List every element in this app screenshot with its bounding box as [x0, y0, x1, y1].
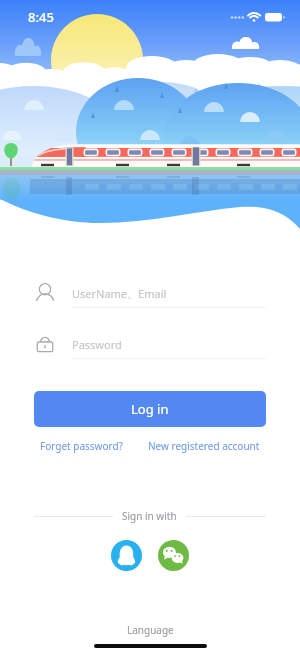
button[interactable]: New registered account	[142, 436, 266, 456]
button[interactable]: Sign in with WeChat	[158, 540, 189, 571]
staticText: Password	[72, 337, 122, 352]
staticText: Sign in with	[122, 509, 177, 523]
staticText: 8:45	[28, 8, 54, 26]
staticText: New registered account	[148, 439, 260, 453]
button[interactable]: Sign in with QQ	[111, 540, 142, 571]
button[interactable]: UserName、Email	[34, 279, 266, 307]
button[interactable]: Log in	[34, 391, 266, 427]
staticText: Log in	[131, 400, 169, 418]
staticText: UserName、Email	[72, 286, 167, 301]
button[interactable]: Password	[34, 330, 266, 358]
staticText: Forget password?	[40, 439, 123, 453]
staticText: Language	[127, 623, 174, 637]
button[interactable]: Forget password?	[34, 436, 129, 456]
button[interactable]: Language	[119, 621, 182, 639]
